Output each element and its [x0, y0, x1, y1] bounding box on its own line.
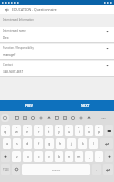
button[interactable]: Space: [22, 164, 90, 175]
staticText: 9: [88, 126, 90, 129]
button[interactable]: n: [65, 151, 73, 162]
button[interactable]: 1: [1, 125, 10, 136]
staticText: r: [38, 129, 40, 134]
staticText: 348-5687-4857: [3, 70, 24, 74]
button[interactable]: Keyboard tool 10: [86, 115, 92, 121]
staticText: Function / Responsibility: [3, 46, 34, 50]
button[interactable]: c: [34, 151, 43, 162]
button[interactable]: 5: [45, 125, 53, 136]
staticText: ,: [89, 154, 90, 159]
staticText: h: [59, 141, 62, 146]
button[interactable]: Keyboard tool 9: [78, 115, 84, 121]
staticText: u: [68, 129, 71, 134]
button[interactable]: Keyboard tool 4: [38, 115, 44, 121]
staticText: k: [82, 141, 84, 146]
button[interactable]: Interviewed name: [0, 27, 114, 43]
button[interactable]: Keyboard tool 8: [70, 115, 76, 121]
button[interactable]: shift: [1, 151, 10, 162]
staticText: 6: [58, 126, 60, 129]
staticText: 7: [68, 126, 70, 129]
staticText: Contact: [3, 63, 13, 67]
button[interactable]: Keyboard tool 6: [54, 115, 60, 121]
staticText: d: [26, 141, 29, 146]
staticText: 1: [5, 126, 7, 129]
staticText: i: [79, 129, 80, 134]
button[interactable]: 4: [34, 125, 43, 136]
staticText: 8: [78, 126, 80, 129]
button[interactable]: 3: [23, 125, 32, 136]
staticText: NEXT: [81, 104, 90, 108]
staticText: .: [96, 167, 97, 172]
button[interactable]: shift2: [105, 151, 113, 162]
staticText: managef: [3, 53, 16, 57]
staticText: 2: [16, 126, 18, 129]
button[interactable]: ?123: [1, 164, 10, 175]
button[interactable]: j: [67, 138, 76, 149]
staticText: t: [48, 129, 50, 134]
button[interactable]: v: [45, 151, 53, 162]
button[interactable]: Keyboard tool 1: [14, 115, 20, 121]
staticText: v: [48, 154, 50, 159]
other: Expand: [106, 30, 109, 33]
button[interactable]: z: [12, 151, 21, 162]
staticText: 4: [38, 126, 40, 129]
button[interactable]: Function / Responsibility: [0, 44, 114, 60]
button[interactable]: f: [34, 138, 43, 149]
staticText: Interviewed name: [3, 29, 26, 33]
button[interactable]: g: [45, 138, 54, 149]
staticText: q: [4, 129, 7, 134]
button[interactable]: Keyboard tool 3: [30, 115, 36, 121]
button[interactable]: 9: [85, 125, 93, 136]
button[interactable]: Back: [2, 5, 11, 14]
staticText: x: [27, 154, 29, 159]
other: Expand: [106, 47, 109, 50]
button[interactable]: More: [100, 115, 106, 121]
button[interactable]: l: [89, 138, 98, 149]
button[interactable]: m: [75, 151, 83, 162]
button[interactable]: x: [23, 151, 32, 162]
staticText: f: [38, 141, 40, 146]
button[interactable]: h: [56, 138, 65, 149]
button[interactable]: b: [55, 151, 63, 162]
staticText: w: [15, 129, 18, 134]
button[interactable]: 8: [75, 125, 83, 136]
button[interactable]: ,: [85, 151, 93, 162]
staticText: y: [58, 129, 60, 134]
button[interactable]: ret2: [103, 164, 113, 175]
button[interactable]: k: [78, 138, 87, 149]
button[interactable]: 6: [55, 125, 63, 136]
button[interactable]: s: [13, 138, 21, 149]
button[interactable]: emoji: [12, 164, 20, 175]
staticText: s: [16, 141, 18, 146]
button[interactable]: .: [95, 151, 103, 162]
button[interactable]: 2: [12, 125, 21, 136]
button[interactable]: a: [3, 138, 11, 149]
staticText: English: [52, 168, 61, 171]
staticText: b: [58, 154, 61, 159]
staticText: 0: [98, 126, 100, 129]
staticText: g: [48, 141, 51, 146]
button[interactable]: 0: [95, 125, 103, 136]
staticText: Deo: [3, 36, 9, 40]
staticText: c: [38, 154, 40, 159]
button[interactable]: Contact: [0, 61, 114, 77]
staticText: n: [68, 154, 71, 159]
button[interactable]: Gboard settings: [1, 114, 9, 122]
button[interactable]: PREV: [0, 100, 57, 111]
button[interactable]: 7: [65, 125, 73, 136]
staticText: PREV: [25, 104, 33, 108]
staticText: j: [71, 141, 72, 146]
staticText: EDUCATION - Questionnaire: [12, 7, 57, 12]
staticText: o: [88, 129, 91, 134]
button[interactable]: ret: [100, 138, 113, 149]
button[interactable]: Keyboard tool 2: [22, 115, 28, 121]
button[interactable]: NEXT: [57, 100, 114, 111]
staticText: .: [99, 154, 100, 159]
other: Expand: [106, 64, 109, 67]
button[interactable]: d: [23, 138, 32, 149]
button[interactable]: Keyboard tool 7: [62, 115, 68, 121]
button[interactable]: del: [105, 125, 113, 136]
button[interactable]: Keyboard tool 5: [46, 115, 52, 121]
